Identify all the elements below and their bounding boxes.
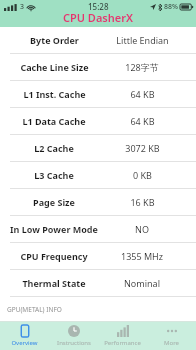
staticText: GPU(METAL) INFO [7, 305, 62, 314]
staticText: Thermal State [22, 277, 86, 289]
staticText: 16 KB [130, 196, 155, 208]
button[interactable]: L3 Cache [0, 162, 196, 188]
staticText: 88% [164, 2, 178, 12]
button[interactable]: Byte Order [0, 27, 196, 53]
button[interactable]: Page Size [0, 189, 196, 215]
staticText: CPU DasherX [63, 10, 134, 25]
staticText: Little Endian [116, 34, 169, 46]
button[interactable]: CPU Frequency [0, 243, 196, 269]
staticText: Cache Line Size [20, 61, 89, 73]
staticText: L3 Cache [34, 169, 74, 181]
staticText: More [164, 339, 179, 347]
staticText: Byte Order [30, 34, 79, 46]
staticText: Overview [11, 339, 38, 347]
staticText: 3 [20, 2, 25, 12]
staticText: 1355 MHz [121, 250, 163, 262]
button[interactable]: L2 Cache [0, 135, 196, 161]
staticText: 64 KB [130, 115, 155, 127]
staticText: Instructions [57, 339, 91, 347]
staticText: 64 KB [130, 88, 155, 100]
staticText: Nominal [124, 277, 160, 289]
staticText: L1 Data Cache [22, 115, 86, 127]
staticText: L1 Inst. Cache [23, 88, 86, 100]
button[interactable]: Thermal State [0, 270, 196, 296]
staticText: CPU Frequency [20, 250, 88, 262]
button[interactable]: Performance [98, 322, 147, 350]
staticText: 0 KB [133, 169, 152, 181]
staticText: NO [135, 223, 149, 235]
staticText: 3072 KB [125, 142, 160, 154]
staticText: Page Size [33, 196, 75, 208]
staticText: 15:28 [88, 1, 109, 12]
button[interactable]: More [147, 322, 196, 350]
button[interactable]: Overview [0, 322, 49, 350]
staticText: L2 Cache [34, 142, 74, 154]
button[interactable]: L1 Data Cache [0, 108, 196, 134]
staticText: Performance [104, 339, 141, 347]
staticText: In Low Power Mode [10, 223, 98, 235]
button[interactable]: Cache Line Size [0, 54, 196, 80]
staticText: 128字节 [125, 61, 159, 73]
button[interactable]: In Low Power Mode [0, 216, 196, 242]
button[interactable]: Instructions [49, 322, 98, 350]
button[interactable]: L1 Inst. Cache [0, 81, 196, 107]
